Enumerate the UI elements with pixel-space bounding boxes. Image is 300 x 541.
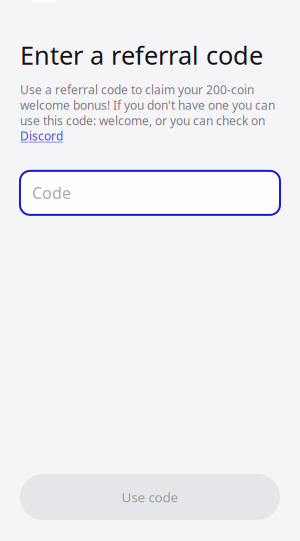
staticText: Discord bbox=[20, 128, 63, 144]
staticText: Use code bbox=[121, 488, 178, 506]
staticText: Enter a referral code bbox=[20, 38, 263, 72]
button[interactable]: Use code bbox=[20, 474, 280, 520]
staticText: welcome bonus! If you don't have one you… bbox=[20, 97, 275, 113]
staticText: Code bbox=[32, 182, 71, 203]
button[interactable]: Discord bbox=[20, 128, 63, 144]
staticText: Use a referral code to claim your 200-co… bbox=[20, 82, 254, 97]
staticText: use this code: welcome, or you can check… bbox=[20, 112, 265, 128]
